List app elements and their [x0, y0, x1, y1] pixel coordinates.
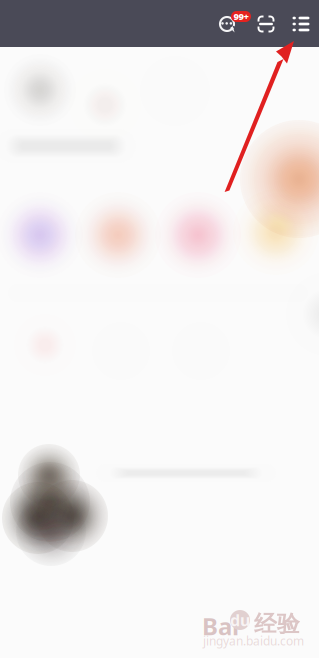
button[interactable]: Menu: [286, 9, 316, 39]
button[interactable]: Scan: [251, 9, 281, 39]
staticText: 99+: [233, 10, 248, 23]
staticText: du: [230, 609, 250, 631]
staticText: Bai: [202, 610, 239, 642]
staticText: jingyan.baidu.com: [203, 633, 304, 649]
staticText: 经验: [254, 610, 300, 638]
button[interactable]: Messages: [215, 5, 255, 45]
